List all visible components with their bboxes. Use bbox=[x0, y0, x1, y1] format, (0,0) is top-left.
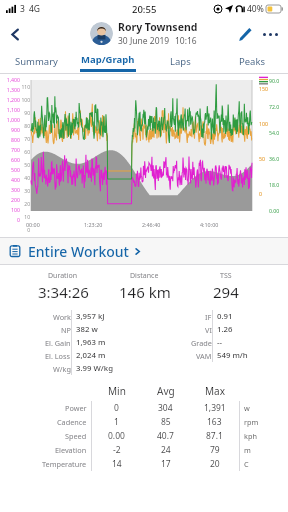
staticText: 163 bbox=[207, 416, 222, 428]
staticText: 20:55 bbox=[132, 3, 157, 16]
staticText: 1,100 bbox=[0, 106, 20, 113]
staticText: 17 bbox=[161, 458, 171, 470]
staticText: Speed bbox=[65, 431, 87, 441]
button[interactable]: Chart legend bbox=[259, 76, 268, 85]
staticText: 79 bbox=[210, 444, 220, 456]
staticText: 70 bbox=[20, 136, 30, 143]
staticText: 40% bbox=[247, 3, 264, 15]
staticText: Peaks bbox=[239, 55, 266, 68]
staticText: 146 km bbox=[119, 282, 171, 302]
staticText: Entire Workout bbox=[28, 242, 129, 261]
staticText: 72.0 bbox=[269, 103, 280, 110]
staticText: Power bbox=[65, 403, 87, 413]
staticText: 50 bbox=[259, 155, 265, 162]
staticText: Avg bbox=[157, 384, 175, 398]
staticText: 00:00 bbox=[26, 221, 40, 228]
staticText: 60 bbox=[20, 149, 30, 156]
staticText: 549 m/h bbox=[217, 350, 248, 361]
staticText: kph bbox=[244, 431, 257, 441]
staticText: 100 bbox=[20, 97, 30, 104]
staticText: 10 bbox=[20, 214, 30, 221]
staticText: 90 bbox=[20, 110, 30, 117]
staticText: Work bbox=[53, 312, 71, 322]
staticText: 30 June 2019 bbox=[118, 35, 170, 47]
staticText: 40 bbox=[20, 175, 30, 182]
staticText: 0 bbox=[259, 190, 262, 197]
staticText: 87.1 bbox=[206, 430, 223, 442]
button[interactable]: Edit bbox=[232, 22, 256, 46]
staticText: 36.0 bbox=[269, 155, 280, 162]
staticText: TSS bbox=[220, 271, 232, 281]
staticText: 2:46:40 bbox=[142, 221, 161, 228]
button[interactable]: More options bbox=[258, 22, 282, 46]
staticText: 4:10:00 bbox=[200, 221, 219, 228]
staticText: 0 bbox=[0, 216, 20, 223]
staticText: Min bbox=[108, 384, 126, 398]
staticText: Duration bbox=[48, 271, 78, 281]
staticText: 1 bbox=[114, 416, 119, 428]
staticText: 10:16 bbox=[175, 35, 197, 47]
staticText: W/kg bbox=[53, 364, 71, 374]
staticText: 18.0 bbox=[269, 181, 280, 188]
staticText: Cadence bbox=[57, 417, 87, 427]
staticText: 700 bbox=[0, 146, 20, 153]
staticText: Elevation bbox=[55, 445, 87, 455]
staticText: 800 bbox=[0, 136, 20, 143]
staticText: 1,963 m bbox=[76, 337, 106, 348]
staticText: 1,400 bbox=[0, 76, 20, 83]
button[interactable]: Laps bbox=[144, 49, 216, 73]
staticText: 3:34:26 bbox=[38, 282, 89, 302]
staticText: w bbox=[244, 403, 250, 413]
staticText: 0.91 bbox=[217, 311, 233, 322]
staticText: 30 bbox=[20, 188, 30, 195]
staticText: 0.00 bbox=[269, 207, 280, 214]
staticText: -2 bbox=[113, 444, 121, 456]
staticText: rpm bbox=[244, 417, 259, 427]
staticText: 100 bbox=[0, 206, 20, 213]
staticText: 300 bbox=[0, 186, 20, 193]
staticText: 40.7 bbox=[157, 430, 174, 442]
staticText: 100 bbox=[259, 120, 268, 127]
staticText: 90.0 bbox=[269, 77, 280, 84]
staticText: 3,957 kJ bbox=[76, 311, 105, 322]
staticText: 1:23:20 bbox=[84, 221, 103, 228]
staticText: 85 bbox=[161, 416, 171, 428]
button[interactable]: Summary bbox=[0, 49, 72, 73]
staticText: VI bbox=[205, 325, 212, 335]
staticText: Grade bbox=[191, 338, 212, 348]
staticText: 0 bbox=[114, 402, 119, 414]
staticText: -- bbox=[217, 337, 223, 348]
staticText: El. Gain bbox=[45, 338, 71, 348]
staticText: 1,200 bbox=[0, 96, 20, 103]
staticText: 3 bbox=[20, 3, 25, 15]
staticText: 54.0 bbox=[269, 129, 280, 136]
staticText: 3.99 W/kg bbox=[76, 363, 114, 374]
staticText: 20 bbox=[210, 458, 220, 470]
button[interactable]: Peaks bbox=[216, 49, 288, 73]
button[interactable]: Map/Graph bbox=[72, 49, 144, 73]
staticText: 1.26 bbox=[217, 324, 233, 335]
button[interactable]: Back bbox=[0, 19, 30, 49]
staticText: 1,000 bbox=[0, 116, 20, 123]
staticText: 80 bbox=[20, 123, 30, 130]
staticText: 20 bbox=[20, 201, 30, 208]
staticText: 150 bbox=[259, 85, 268, 92]
staticText: m bbox=[244, 445, 251, 455]
staticText: 900 bbox=[0, 126, 20, 133]
staticText: C bbox=[244, 459, 249, 469]
staticText: 24 bbox=[161, 444, 171, 456]
staticText: Max bbox=[205, 384, 225, 398]
staticText: 2,024 m bbox=[76, 350, 106, 361]
staticText: 110 bbox=[20, 84, 30, 91]
staticText: 400 bbox=[0, 176, 20, 183]
staticText: Summary bbox=[15, 55, 58, 68]
staticText: 600 bbox=[0, 156, 20, 163]
staticText: 500 bbox=[0, 166, 20, 173]
staticText: El. Loss bbox=[45, 351, 71, 361]
button[interactable]: Entire Workout bbox=[0, 238, 288, 264]
staticText: 200 bbox=[0, 196, 20, 203]
staticText: 14 bbox=[112, 458, 122, 470]
staticText: Distance bbox=[130, 271, 159, 281]
staticText: IF bbox=[205, 312, 212, 322]
staticText: 0 bbox=[20, 227, 30, 234]
